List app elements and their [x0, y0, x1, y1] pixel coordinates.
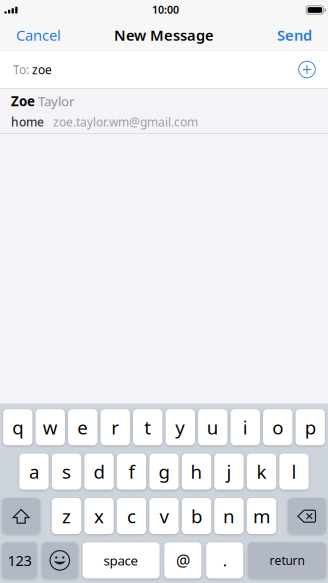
button[interactable]: b [182, 498, 211, 534]
button[interactable]: l [279, 454, 309, 490]
staticText: h [190, 459, 202, 484]
staticText: k [256, 459, 266, 484]
staticText: j [226, 459, 231, 484]
staticText: c [127, 504, 136, 528]
button[interactable]: j [214, 454, 244, 490]
staticText: s [62, 459, 71, 484]
button[interactable]: c [117, 498, 146, 534]
button[interactable]: . [206, 542, 243, 578]
staticText: zoe [29, 61, 52, 77]
staticText: u [207, 415, 219, 440]
staticText: Taylor [35, 92, 75, 110]
button[interactable]: 123 [2, 542, 37, 578]
staticText: g [158, 459, 169, 484]
button[interactable]: Send [261, 20, 328, 50]
button[interactable]: Emoji [42, 542, 78, 578]
button[interactable]: p [296, 409, 325, 445]
staticText: . [223, 550, 227, 571]
staticText: r [111, 415, 119, 440]
staticText: l [291, 459, 296, 484]
staticText: return [269, 552, 304, 568]
staticText: d [93, 459, 104, 484]
button[interactable]: u [198, 409, 227, 445]
staticText: Cancel [16, 25, 61, 45]
button[interactable]: Delete [288, 498, 326, 534]
staticText: o [272, 415, 283, 440]
staticText: w [43, 415, 58, 440]
staticText: New Message [114, 25, 214, 45]
staticText: m [253, 504, 270, 528]
button[interactable]: @ [164, 542, 201, 578]
staticText: To: [13, 61, 29, 77]
button[interactable]: e [68, 409, 97, 445]
button[interactable]: q [3, 409, 32, 445]
staticText: a [29, 459, 39, 484]
button[interactable]: n [214, 498, 244, 534]
button[interactable]: return [248, 542, 326, 578]
staticText: zoe.taylor.wm@gmail.com [44, 114, 198, 130]
button[interactable]: w [36, 409, 65, 445]
button[interactable]: i [231, 409, 260, 445]
staticText: n [223, 504, 235, 528]
staticText: i [243, 415, 248, 440]
staticText: v [159, 504, 168, 528]
staticText: b [191, 504, 202, 528]
button[interactable]: o [263, 409, 292, 445]
staticText: y [175, 415, 185, 440]
staticText: 123 [7, 551, 31, 570]
staticText: @ [176, 550, 190, 571]
staticText: Send [277, 25, 312, 45]
button[interactable]: s [52, 454, 81, 490]
button[interactable]: Cancel [0, 20, 77, 50]
staticText: e [77, 415, 88, 440]
staticText: home [11, 114, 44, 130]
staticText: t [144, 415, 151, 440]
button[interactable]: h [182, 454, 211, 490]
button[interactable]: z [52, 498, 81, 534]
staticText: Zoe [11, 92, 35, 110]
button[interactable]: g [149, 454, 179, 490]
staticText: f [128, 459, 134, 484]
button[interactable]: r [101, 409, 130, 445]
staticText: x [94, 504, 104, 528]
staticText: q [12, 415, 23, 440]
button[interactable]: m [247, 498, 276, 534]
button[interactable]: Zoe [0, 89, 328, 133]
staticText: p [305, 415, 316, 440]
button[interactable]: y [166, 409, 195, 445]
button[interactable]: x [84, 498, 114, 534]
button[interactable]: Shift [2, 498, 40, 534]
button[interactable]: Add contact [298, 60, 316, 78]
button[interactable]: a [19, 454, 49, 490]
staticText: 10:00 [152, 2, 179, 17]
staticText: space [104, 551, 139, 569]
staticText: z [62, 504, 71, 528]
button[interactable]: f [117, 454, 146, 490]
button[interactable]: d [84, 454, 114, 490]
button[interactable]: t [133, 409, 162, 445]
button[interactable]: v [149, 498, 179, 534]
button[interactable]: space [83, 542, 160, 578]
button[interactable]: k [247, 454, 276, 490]
